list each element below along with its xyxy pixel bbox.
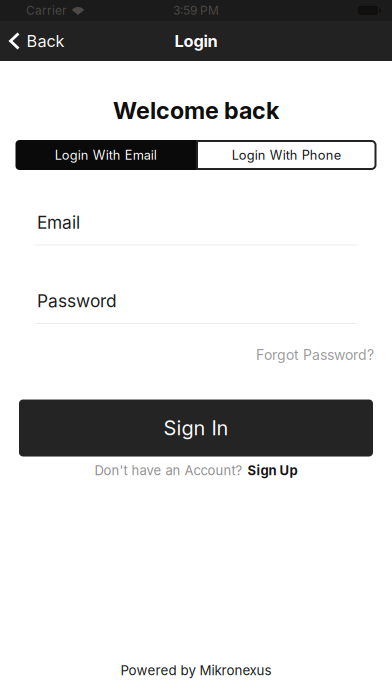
staticText: Powered by Mikronexus [120, 662, 271, 678]
staticText: Back [26, 31, 64, 51]
button[interactable]: Forgot Password? [256, 345, 392, 365]
button[interactable]: Login With Email [15, 140, 196, 170]
staticText: Login [174, 31, 217, 51]
staticText: 3:59 PM [173, 3, 219, 18]
button[interactable]: Email [0, 212, 392, 245]
staticText: Login With Email [55, 147, 157, 163]
staticText: Welcome back [113, 96, 279, 125]
staticText: Login With Phone [232, 147, 341, 163]
staticText: Password [37, 290, 117, 311]
button[interactable]: Back [0, 31, 64, 51]
staticText: Carrier [26, 3, 67, 18]
button[interactable]: Sign In [19, 399, 373, 456]
staticText: Sign In [163, 416, 228, 440]
button[interactable]: Password [0, 291, 392, 324]
staticText: Email [37, 212, 80, 233]
button[interactable]: Sign Up [247, 463, 297, 478]
staticText: Don't have an Account? [94, 463, 242, 478]
button[interactable]: Login With Phone [196, 140, 376, 170]
staticText: Forgot Password? [256, 346, 374, 363]
staticText: Sign Up [247, 463, 297, 478]
